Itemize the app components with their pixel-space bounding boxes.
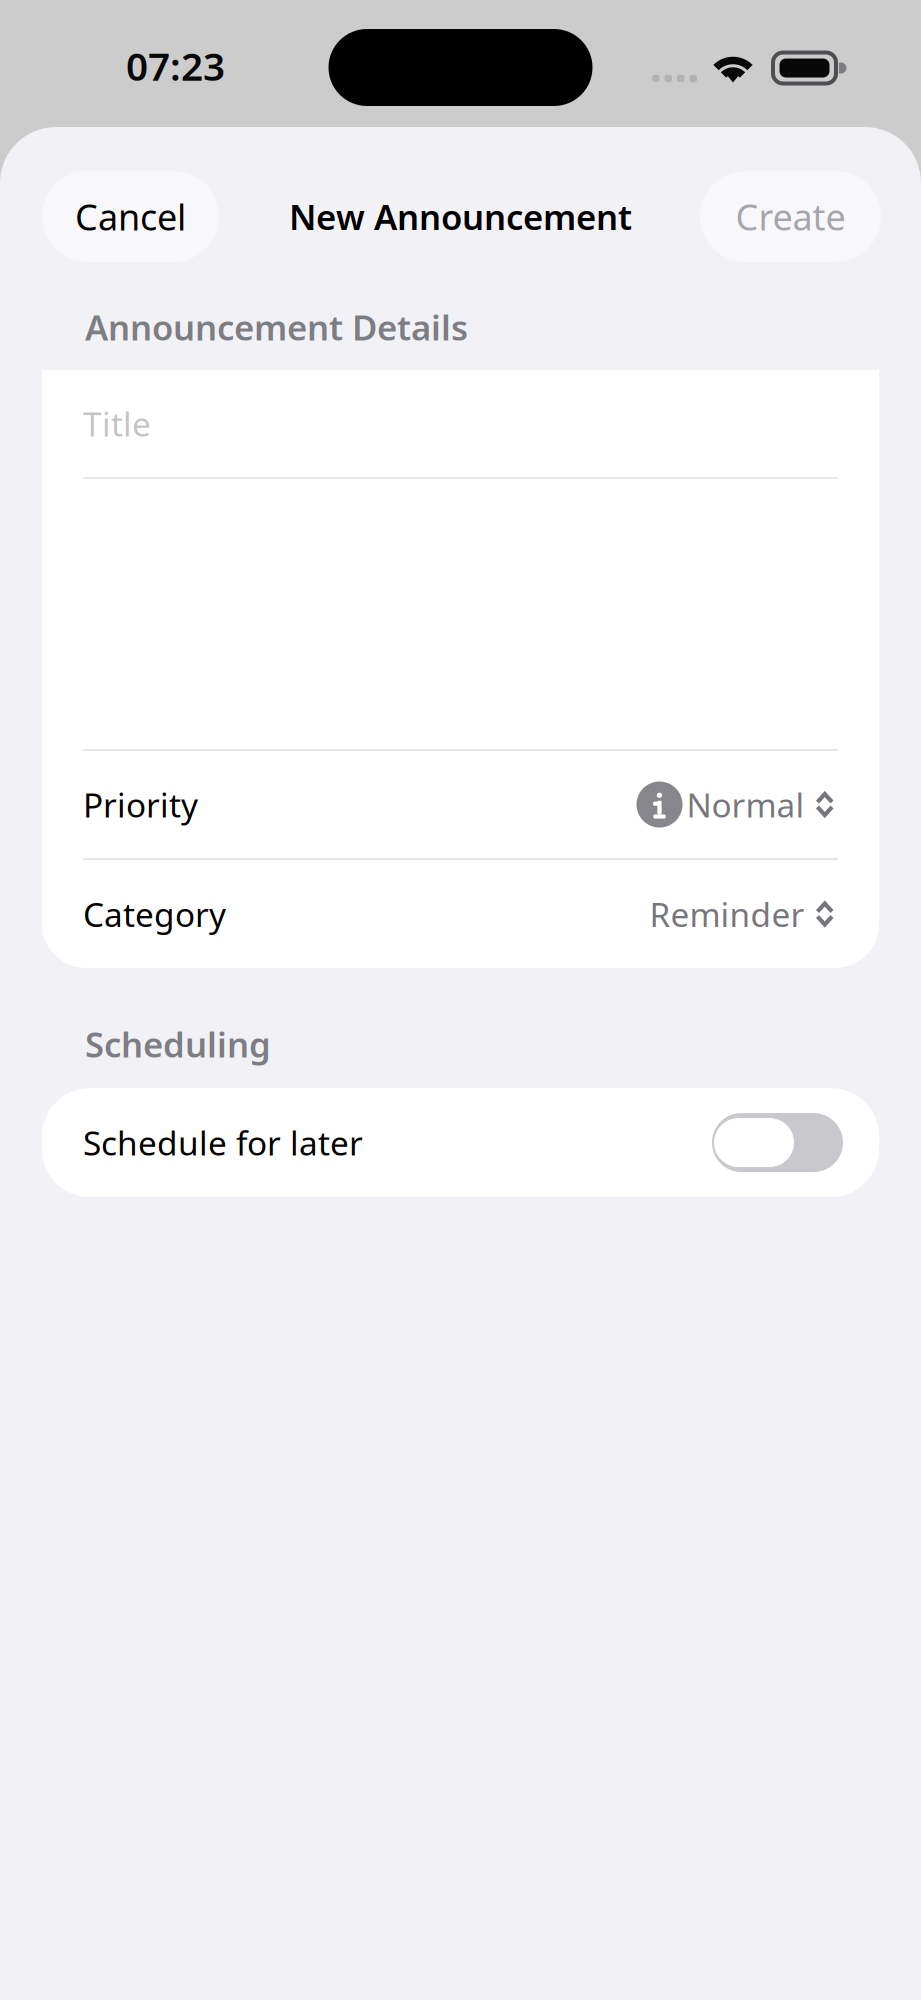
staticText: Announcement Details	[85, 304, 468, 350]
staticText: Title	[83, 401, 151, 446]
staticText: Create	[735, 193, 845, 240]
button[interactable]: Cancel	[42, 171, 219, 262]
staticText: 07:23	[126, 40, 225, 91]
staticText: Category	[83, 892, 226, 936]
staticText: Scheduling	[85, 1021, 271, 1067]
staticText: Schedule for later	[83, 1120, 363, 1165]
button[interactable]: Create	[700, 171, 881, 262]
button[interactable]: Schedule for later	[42, 1088, 879, 1197]
staticText: Normal	[686, 782, 804, 827]
button[interactable]: Priority	[42, 751, 879, 858]
staticText: Priority	[83, 782, 198, 827]
staticText: Cancel	[75, 193, 186, 240]
staticText: New Announcement	[289, 193, 632, 239]
staticText: Reminder	[649, 892, 804, 936]
button[interactable]: Category	[42, 860, 879, 968]
button[interactable]: Title	[42, 370, 879, 477]
